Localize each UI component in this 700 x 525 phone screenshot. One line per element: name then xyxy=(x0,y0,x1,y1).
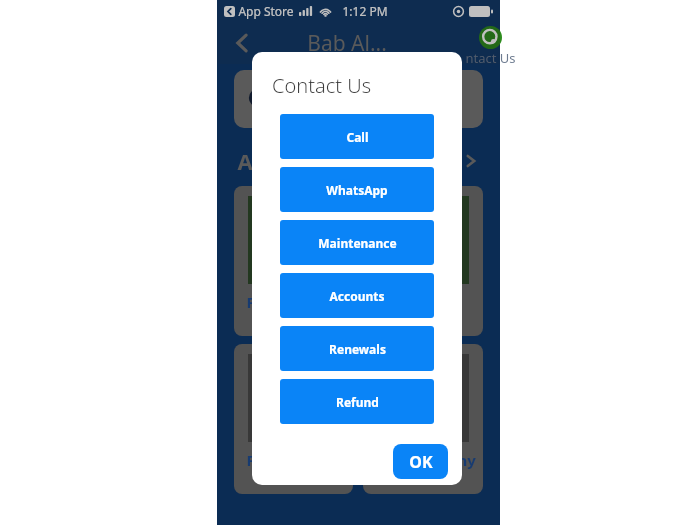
staticText: Ford... xyxy=(246,450,293,470)
button[interactable]: Ford... xyxy=(234,344,353,494)
staticText: y xyxy=(375,292,384,312)
staticText: F xyxy=(246,292,255,312)
button[interactable]: y xyxy=(363,186,483,336)
button[interactable] xyxy=(234,70,483,128)
staticText: OK xyxy=(409,451,433,473)
staticText: Nissan Sunny xyxy=(375,450,476,470)
staticText: Contact Us xyxy=(272,72,371,99)
button[interactable]: F xyxy=(234,186,353,336)
button[interactable]: OK xyxy=(393,444,448,479)
staticText: Call xyxy=(346,129,369,145)
button[interactable]: Back xyxy=(230,30,256,56)
staticText: WhatsApp xyxy=(326,182,388,198)
button[interactable]: WhatsApp xyxy=(280,167,434,212)
staticText: 1:12 PM xyxy=(342,3,388,19)
button[interactable]: Renewals xyxy=(280,326,434,371)
button[interactable]: Maintenance xyxy=(280,220,434,265)
staticText: Bab Al... xyxy=(307,29,387,58)
button[interactable]: Accounts xyxy=(280,273,434,318)
staticText: Refund xyxy=(336,394,379,410)
staticText: App Store xyxy=(238,3,294,19)
staticText: Maintenance xyxy=(318,235,397,251)
staticText: Accounts xyxy=(329,288,385,304)
button[interactable]: Call xyxy=(280,114,434,159)
button[interactable]: Refund xyxy=(280,379,434,424)
button[interactable]: Contact Us on WhatsApp xyxy=(465,26,516,67)
staticText: A xyxy=(237,146,253,176)
staticText: ntact Us xyxy=(465,49,516,67)
staticText: Renewals xyxy=(329,341,386,357)
button[interactable]: Nissan Sunny xyxy=(363,344,483,494)
